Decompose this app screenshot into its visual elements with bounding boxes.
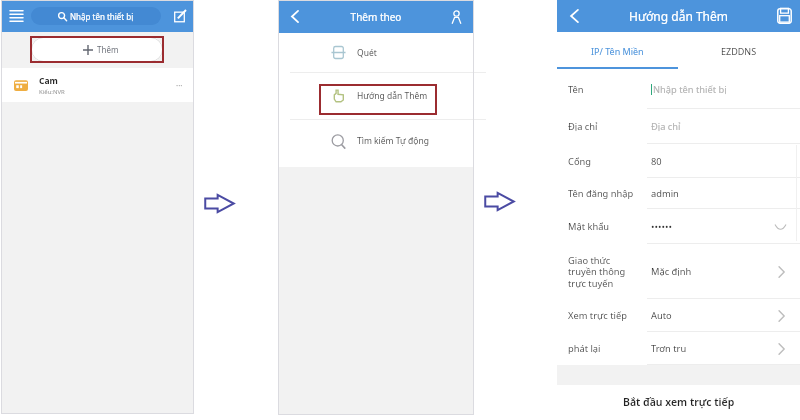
button[interactable]: Quét [278, 33, 474, 72]
button[interactable]: Back [283, 0, 307, 33]
button[interactable]: Cổng [557, 144, 800, 178]
button[interactable]: Giao thức truyền thông trực tuyến [557, 244, 800, 299]
button[interactable]: EZDDNS [678, 32, 800, 69]
button[interactable]: Thêm [31, 37, 163, 62]
staticText: •••••• [651, 220, 672, 233]
button[interactable]: Tên đăng nhập [557, 178, 800, 209]
staticText: Kiểu:NVR [39, 88, 65, 96]
staticText: Mặc định [651, 265, 692, 278]
button[interactable]: Save [768, 0, 800, 32]
staticText: Thêm theo [278, 10, 474, 24]
button[interactable]: Edit [169, 0, 191, 32]
staticText: phát lại [568, 342, 601, 355]
button[interactable]: Mật khẩu [557, 209, 800, 244]
staticText: Quét [357, 47, 377, 59]
staticText: Giao thức truyền thông trực tuyến [568, 254, 626, 290]
button[interactable]: phát lại [557, 332, 800, 365]
staticText: Hướng dẫn Thêm [557, 8, 800, 24]
staticText: admin [651, 187, 679, 200]
button[interactable]: Xem trực tiếp [557, 299, 800, 332]
button[interactable]: Nhập tên thiết bị [31, 7, 161, 25]
button[interactable]: Hướng dẫn Thêm [278, 72, 474, 119]
staticText: Auto [651, 309, 672, 322]
staticText: Bắt đầu xem trực tiếp [623, 395, 735, 409]
staticText: IP/ Tên Miền [591, 45, 644, 57]
staticText: EZDDNS [721, 45, 757, 57]
staticText: Trơn tru [651, 342, 687, 355]
button[interactable]: IP/ Tên Miền [557, 32, 678, 69]
staticText: Tên đăng nhập [568, 187, 634, 200]
button[interactable]: Back [561, 0, 587, 32]
staticText: Nhập tên thiết bị [70, 11, 134, 22]
button[interactable]: Account [444, 0, 469, 33]
button[interactable]: Menu [3, 0, 29, 32]
staticText: Thêm [97, 44, 119, 55]
staticText: Địa chỉ [651, 120, 681, 133]
staticText: Tên [568, 83, 584, 96]
staticText: Địa chỉ [568, 120, 598, 133]
staticText: Hướng dẫn Thêm [357, 90, 428, 102]
staticText: Cổng [568, 155, 591, 168]
staticText: Xem trực tiếp [568, 309, 627, 322]
button[interactable]: Tìm kiếm Tự động [278, 119, 474, 163]
button[interactable]: Tên [557, 69, 800, 109]
staticText: ··· [176, 80, 183, 91]
staticText: Tìm kiếm Tự động [357, 135, 429, 147]
staticText: 80 [651, 155, 662, 168]
staticText: Nhập tên thiết bị [653, 83, 727, 96]
staticText: Mật khẩu [568, 220, 610, 233]
button[interactable]: Địa chỉ [557, 109, 800, 144]
staticText: Cam [39, 75, 58, 87]
button[interactable]: Bắt đầu xem trực tiếp [557, 385, 800, 418]
button[interactable]: Cam [1, 68, 194, 102]
